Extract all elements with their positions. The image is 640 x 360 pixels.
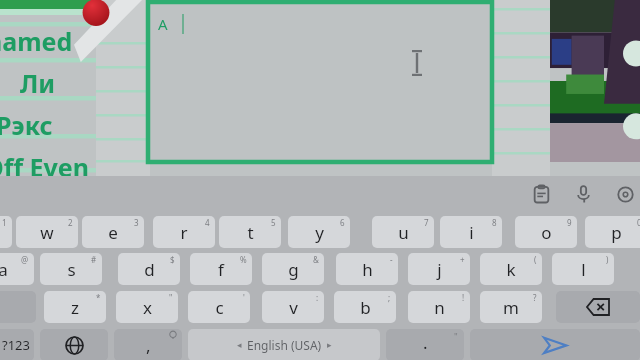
button[interactable]: Clipboard	[528, 181, 554, 207]
button[interactable]: b	[334, 291, 396, 323]
staticText: "	[454, 330, 458, 342]
staticText: 6	[340, 217, 345, 228]
staticText: (	[534, 254, 537, 265]
button[interactable]: ,	[114, 329, 182, 360]
button[interactable]: .	[386, 329, 464, 360]
staticText: &	[313, 254, 319, 265]
staticText: 8	[492, 217, 497, 228]
button[interactable]: v	[262, 291, 324, 323]
button[interactable]: o	[515, 216, 577, 248]
staticText: ▸	[327, 340, 332, 350]
button[interactable]: i	[440, 216, 502, 248]
button[interactable]: g	[262, 253, 324, 285]
staticText: b	[360, 296, 371, 319]
staticText: 4	[205, 217, 210, 228]
button[interactable]: h	[336, 253, 398, 285]
button[interactable]: k	[480, 253, 542, 285]
staticText: z	[71, 296, 79, 319]
staticText: ?123	[2, 336, 30, 354]
staticText: 2	[68, 217, 73, 228]
staticText: a	[0, 258, 8, 281]
staticText: r	[180, 221, 188, 244]
button[interactable]: l	[552, 253, 614, 285]
staticText: ;	[388, 292, 391, 303]
button[interactable]: f	[190, 253, 252, 285]
button[interactable]: y	[288, 216, 350, 248]
staticText: 0	[637, 217, 640, 228]
button[interactable]: c	[188, 291, 250, 323]
staticText: !	[462, 292, 465, 303]
staticText: English (USA)	[247, 337, 322, 353]
staticText: Ли	[20, 66, 56, 100]
staticText: v	[289, 296, 298, 319]
staticText: ,	[146, 334, 151, 357]
button[interactable]: ◂	[188, 329, 380, 360]
button[interactable]: x	[116, 291, 178, 323]
staticText: 9	[567, 217, 572, 228]
button[interactable]: Settings	[612, 181, 638, 207]
button[interactable]: n	[408, 291, 470, 323]
staticText: )	[606, 254, 609, 265]
button[interactable]: w	[16, 216, 78, 248]
staticText: y	[315, 221, 324, 244]
button[interactable]: A	[148, 2, 492, 162]
staticText: l	[581, 258, 586, 281]
staticText: Рэкс	[0, 108, 53, 142]
button[interactable]: t	[219, 216, 281, 248]
staticText: *	[96, 292, 101, 303]
staticText: A	[158, 14, 168, 34]
staticText: +	[460, 254, 465, 265]
staticText: #	[91, 254, 97, 265]
staticText: "	[169, 292, 173, 303]
button[interactable]: Video preview	[550, 0, 640, 162]
button[interactable]: r	[153, 216, 215, 248]
button[interactable]: u	[372, 216, 434, 248]
button[interactable]: e	[82, 216, 144, 248]
staticText: x	[143, 296, 152, 319]
staticText: p	[611, 221, 622, 244]
staticText: ?	[533, 292, 537, 303]
button[interactable]: s	[40, 253, 102, 285]
button[interactable]: q	[0, 216, 12, 248]
staticText: o	[541, 221, 552, 244]
staticText: 3	[134, 217, 139, 228]
button[interactable]: z	[44, 291, 106, 323]
button[interactable]: m	[480, 291, 542, 323]
staticText: d	[144, 258, 155, 281]
staticText: -	[390, 254, 393, 265]
staticText: %	[240, 254, 247, 265]
staticText: 7	[424, 217, 429, 228]
button[interactable]: ?123	[0, 329, 34, 360]
staticText: c	[215, 296, 224, 319]
staticText: n	[434, 296, 445, 319]
staticText: '	[243, 292, 245, 303]
staticText: w	[40, 221, 54, 244]
staticText: g	[288, 258, 299, 281]
staticText: f	[218, 258, 224, 281]
staticText: h	[362, 258, 373, 281]
button[interactable]: Change keyboard language	[40, 329, 108, 360]
staticText: .	[423, 331, 428, 354]
staticText: Off Even	[0, 150, 90, 184]
staticText: t	[247, 221, 254, 244]
button[interactable]: Backspace	[556, 291, 640, 323]
staticText: j	[437, 258, 442, 281]
button[interactable]: p	[585, 216, 640, 248]
button[interactable]: Voice input	[570, 181, 596, 207]
staticText: m	[503, 296, 519, 319]
staticText: 1	[2, 217, 7, 228]
button[interactable]: Send	[470, 329, 640, 360]
staticText: @	[21, 254, 29, 265]
button[interactable]: a	[0, 253, 34, 285]
staticText: i	[469, 221, 474, 244]
staticText: 5	[271, 217, 276, 228]
staticText: $	[170, 254, 175, 265]
staticText: e	[108, 221, 118, 244]
staticText: :	[316, 292, 319, 303]
staticText: k	[506, 258, 516, 281]
button[interactable]: d	[118, 253, 180, 285]
staticText: s	[67, 258, 76, 281]
button[interactable]: j	[408, 253, 470, 285]
staticText: ◂	[237, 340, 242, 350]
